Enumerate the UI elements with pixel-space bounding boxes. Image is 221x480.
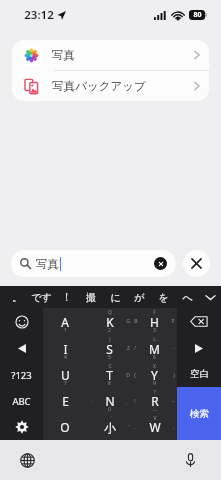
- staticText: N: [105, 393, 115, 409]
- button[interactable]: 写真: [12, 40, 209, 70]
- button[interactable]: 撮: [79, 286, 103, 308]
- staticText: 検索: [190, 408, 209, 420]
- staticText: に: [110, 291, 121, 304]
- button[interactable]: 空白: [177, 361, 221, 387]
- button[interactable]: Voice input: [177, 447, 203, 473]
- staticText: 、: [125, 398, 130, 404]
- staticText: ABC: [12, 395, 31, 408]
- staticText: P: [171, 318, 175, 325]
- staticText: 空白: [190, 368, 209, 380]
- staticText: ?: [153, 389, 156, 396]
- button[interactable]: 。: [4, 286, 29, 308]
- button[interactable]: ABC: [0, 388, 43, 414]
- button[interactable]: 検索: [177, 387, 221, 440]
- staticText: が: [134, 291, 145, 304]
- button[interactable]: へ: [175, 286, 199, 308]
- staticText: 1: [64, 327, 67, 334]
- staticText: ): [173, 372, 175, 379]
- staticText: I: [63, 341, 68, 357]
- button[interactable]: Close search: [183, 250, 210, 277]
- button[interactable]: T: [87, 362, 132, 388]
- staticText: ・: [89, 398, 94, 404]
- staticText: -: [173, 345, 175, 352]
- staticText: E: [62, 393, 69, 409]
- staticText: ~: [172, 398, 175, 405]
- button[interactable]: Backspace: [177, 308, 221, 335]
- button[interactable]: 写真バックアップ: [12, 71, 209, 101]
- button[interactable]: !: [54, 286, 79, 308]
- staticText: !: [65, 290, 68, 304]
- button[interactable]: を: [151, 286, 175, 308]
- button[interactable]: Expand suggestions: [199, 286, 221, 308]
- staticText: 撮: [86, 291, 96, 304]
- staticText: 23:12: [24, 7, 54, 23]
- staticText: O: [60, 419, 70, 435]
- button[interactable]: です: [29, 286, 54, 308]
- button[interactable]: A: [43, 308, 87, 335]
- button[interactable]: が: [127, 286, 151, 308]
- button[interactable]: Y: [132, 362, 177, 388]
- button[interactable]: I: [43, 335, 87, 362]
- staticText: B: [134, 318, 138, 325]
- button[interactable]: O: [43, 414, 87, 440]
- staticText: を: [158, 291, 169, 304]
- staticText: へ: [182, 291, 193, 304]
- staticText: Z: [127, 345, 130, 352]
- button[interactable]: U: [43, 362, 87, 388]
- button[interactable]: Move cursor left: [0, 335, 43, 362]
- staticText: C: [108, 363, 112, 370]
- button[interactable]: W: [132, 414, 177, 440]
- staticText: 5: [108, 354, 111, 361]
- staticText: X: [153, 363, 156, 370]
- staticText: W: [149, 419, 161, 435]
- button[interactable]: S: [87, 335, 132, 362]
- button[interactable]: Change keyboard language: [14, 447, 40, 473]
- staticText: 2: [108, 327, 111, 334]
- staticText: 8: [108, 380, 111, 387]
- button[interactable]: 写真: [11, 250, 176, 277]
- button[interactable]: H: [132, 308, 177, 335]
- button[interactable]: ?123: [0, 362, 43, 388]
- staticText: 写真: [36, 257, 59, 271]
- staticText: 。: [12, 291, 22, 304]
- staticText: Y: [151, 367, 158, 383]
- button[interactable]: Move cursor right: [177, 335, 221, 361]
- staticText: D: [126, 372, 130, 379]
- button[interactable]: K: [87, 308, 132, 335]
- staticText: G: [126, 318, 130, 325]
- staticText: K: [106, 314, 114, 330]
- staticText: /: [134, 345, 136, 352]
- staticText: 9: [153, 380, 156, 387]
- staticText: 写真: [52, 48, 75, 62]
- button[interactable]: M: [132, 335, 177, 362]
- button[interactable]: E: [43, 388, 87, 414]
- staticText: T: [106, 367, 113, 383]
- button[interactable]: に: [103, 286, 127, 308]
- staticText: ゜: [124, 424, 130, 430]
- staticText: M: [149, 341, 160, 357]
- button[interactable]: N: [87, 388, 132, 414]
- staticText: 3: [153, 327, 156, 334]
- staticText: ゛: [107, 415, 113, 421]
- staticText: H: [150, 314, 159, 330]
- staticText: F: [153, 309, 156, 316]
- staticText: 6: [153, 354, 156, 361]
- staticText: R: [151, 393, 159, 409]
- staticText: !: [134, 398, 136, 405]
- staticText: L: [153, 336, 156, 343]
- button[interactable]: R: [132, 388, 177, 414]
- staticText: S: [106, 341, 113, 357]
- staticText: Q: [108, 309, 112, 316]
- button[interactable]: Keyboard settings: [0, 414, 43, 440]
- staticText: …: [153, 406, 157, 413]
- staticText: 7: [64, 380, 67, 387]
- staticText: 4: [64, 354, 67, 361]
- staticText: .: [134, 424, 136, 431]
- staticText: (: [134, 372, 136, 379]
- staticText: 0: [108, 406, 111, 413]
- staticText: です: [31, 291, 52, 304]
- staticText: ,: [173, 424, 175, 431]
- button[interactable]: Emoji: [0, 308, 43, 335]
- button[interactable]: 小: [87, 414, 132, 440]
- button[interactable]: Clear text: [154, 257, 167, 270]
